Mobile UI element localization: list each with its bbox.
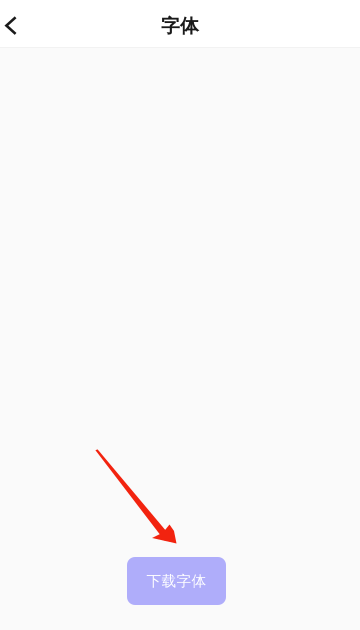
- staticText: 字体: [161, 14, 199, 37]
- button[interactable]: Back: [0, 0, 39, 47]
- staticText: 下载字体: [146, 572, 206, 590]
- button[interactable]: 下载字体: [127, 557, 226, 605]
